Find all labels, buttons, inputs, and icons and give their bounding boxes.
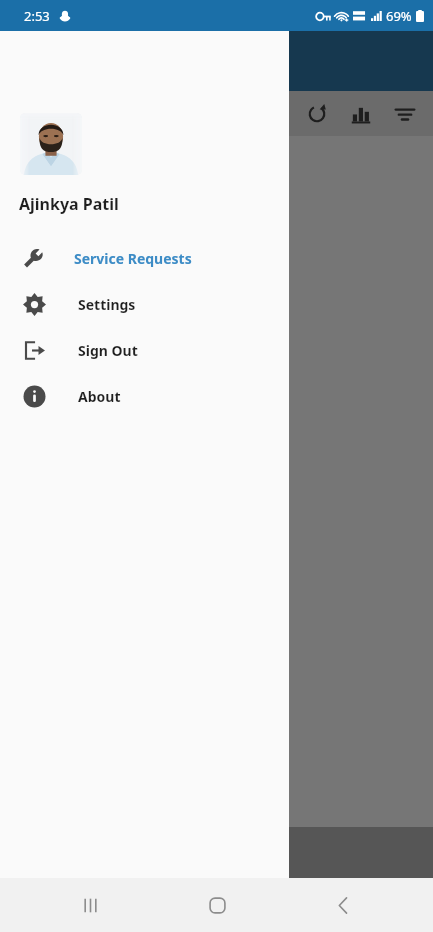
button[interactable]: Back xyxy=(307,878,379,932)
staticText: 2:53 xyxy=(24,7,50,25)
button[interactable]: About xyxy=(0,373,289,419)
staticText: Ajinkya Patil xyxy=(19,193,119,215)
staticText: About xyxy=(78,387,121,406)
staticText: Service Requests xyxy=(74,249,192,268)
button[interactable]: Filter xyxy=(383,92,427,136)
button[interactable]: Sign Out xyxy=(0,327,289,373)
button[interactable]: Settings xyxy=(0,281,289,327)
staticText: Sign Out xyxy=(78,341,138,360)
button[interactable]: Statistics xyxy=(339,92,383,136)
button[interactable]: Refresh xyxy=(295,92,339,136)
button[interactable]: Recent apps xyxy=(54,878,126,932)
button[interactable]: Service Requests xyxy=(0,235,289,281)
button[interactable]: Home xyxy=(181,878,253,932)
staticText: 69% xyxy=(386,7,412,25)
staticText: Settings xyxy=(78,295,136,314)
